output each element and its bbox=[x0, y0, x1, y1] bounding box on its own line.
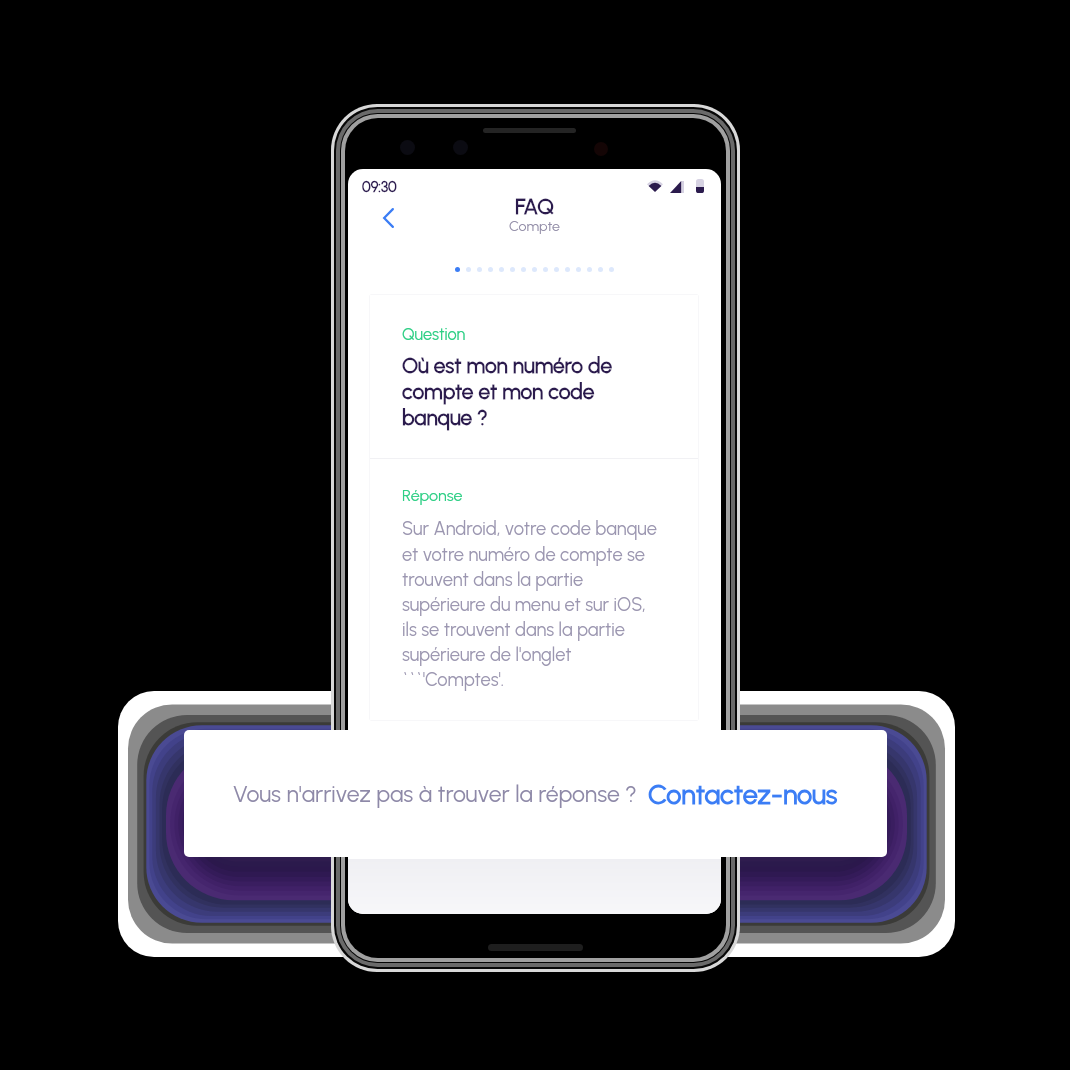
staticText: Vous n'arrivez pas à trouver la réponse … bbox=[233, 780, 637, 808]
staticText: Contactez-nous bbox=[648, 778, 838, 810]
staticText: Question bbox=[402, 325, 466, 345]
staticText: FAQ bbox=[515, 194, 554, 220]
staticText: Sur Android, votre code banque et votre … bbox=[402, 518, 660, 690]
staticText: Où est mon numéro de compte et mon code … bbox=[402, 353, 617, 430]
staticText: Réponse bbox=[402, 486, 463, 505]
staticText: 09:30 bbox=[362, 178, 397, 195]
button[interactable]: Back bbox=[377, 207, 399, 229]
button[interactable]: Vous n'arrivez pas à trouver la réponse … bbox=[184, 730, 887, 857]
staticText: Compte bbox=[509, 218, 561, 235]
